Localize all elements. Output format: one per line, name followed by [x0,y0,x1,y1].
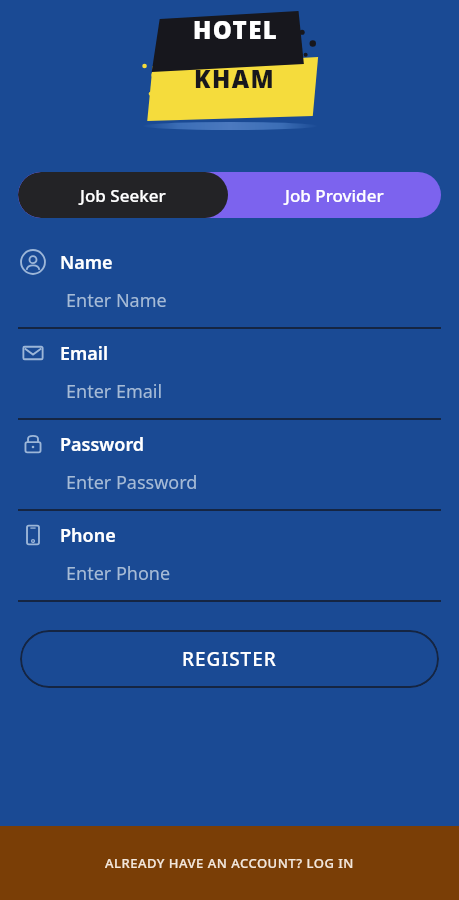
button[interactable]: Name [0,238,459,327]
other: Email [20,340,46,366]
button[interactable]: Job Provider [228,172,441,218]
button[interactable]: REGISTER [20,630,439,688]
button[interactable]: Email [0,329,459,418]
button[interactable]: Job Seeker [18,172,228,218]
staticText: Enter Phone [66,561,171,586]
staticText: Email [60,341,109,366]
staticText: Job Provider [285,184,384,207]
staticText: KHAM [194,62,276,95]
staticText: Job Seeker [80,184,166,207]
staticText: Phone [60,523,116,548]
staticText: REGISTER [182,646,277,672]
staticText: Enter Password [66,470,198,495]
button[interactable]: ALREADY HAVE AN ACCOUNT? LOG IN [0,826,459,900]
other: Password [20,431,46,457]
staticText: ALREADY HAVE AN ACCOUNT? LOG IN [105,854,354,872]
button[interactable]: Password [0,420,459,509]
staticText: Name [60,250,113,275]
staticText: Password [60,432,145,457]
staticText: Enter Name [66,288,167,313]
other: Phone [20,522,46,548]
button[interactable]: Phone [0,511,459,600]
staticText: HOTEL [193,13,279,46]
other: Name [20,249,46,275]
staticText: Enter Email [66,379,163,404]
